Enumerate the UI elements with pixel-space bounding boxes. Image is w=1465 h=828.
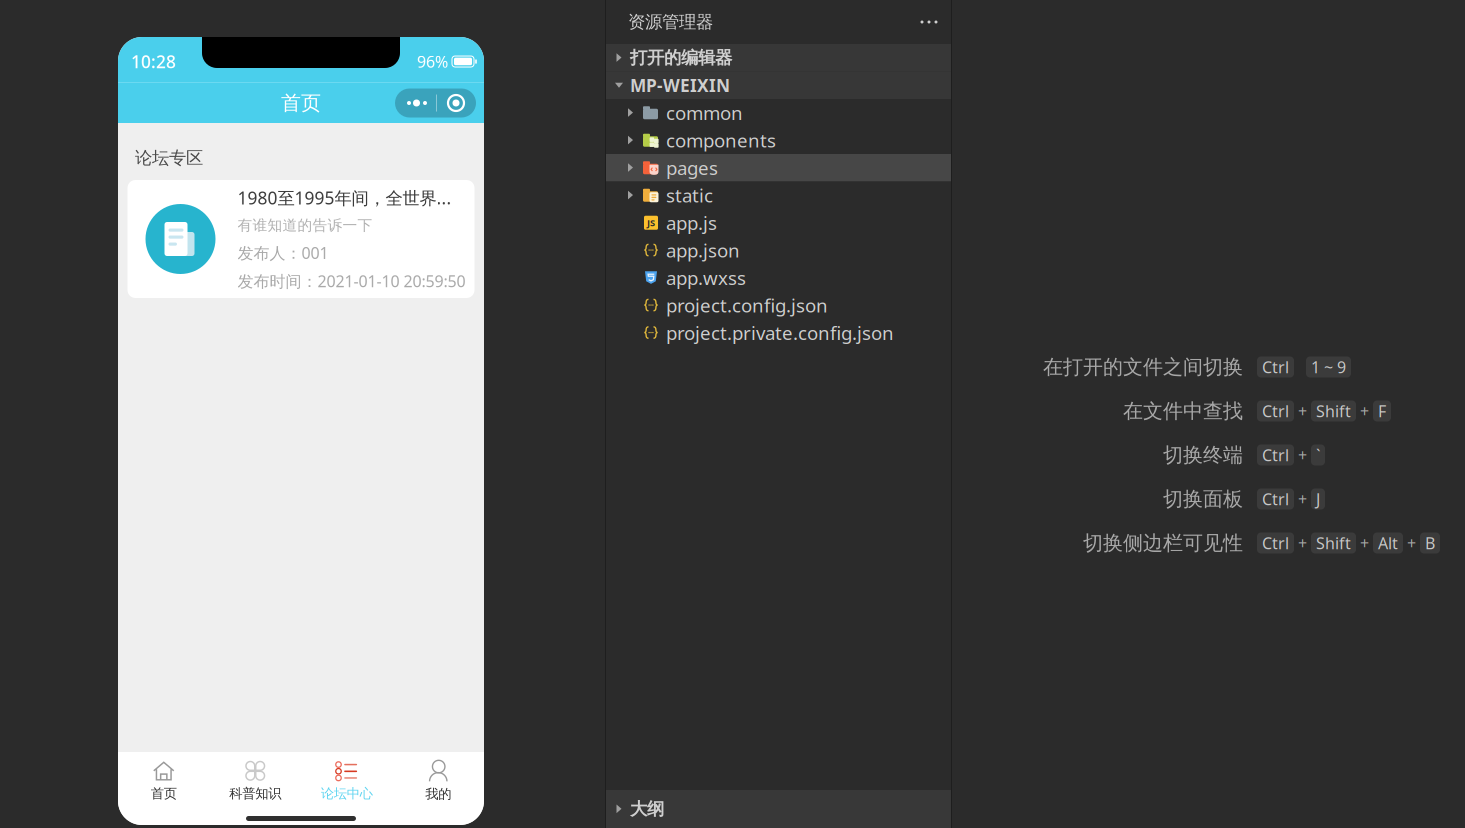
button[interactable]: static [606, 181, 951, 209]
staticText: 打开的编辑器 [630, 47, 732, 68]
staticText: 我的 [425, 786, 451, 802]
staticText: 大纲 [630, 798, 664, 820]
button[interactable]: pages [606, 154, 951, 181]
staticText: Ctrl [1262, 444, 1289, 466]
staticText: project.private.config.json [666, 320, 894, 345]
button[interactable]: 首页 [118, 757, 209, 805]
staticText: MP-WEIXIN [630, 74, 730, 97]
staticText: + [1360, 532, 1369, 554]
staticText: 1 ~ 9 [1311, 356, 1346, 378]
button[interactable]: Mini program menu [395, 88, 476, 117]
staticText: + [1360, 400, 1369, 422]
button[interactable]: app.json [606, 236, 951, 264]
staticText: 首页 [151, 785, 177, 802]
staticText: Ctrl [1262, 488, 1289, 510]
staticText: 发布人：001 [237, 242, 328, 263]
button[interactable]: MP-WEIXIN [606, 71, 951, 99]
staticText: Shift [1316, 532, 1351, 554]
staticText: J [1316, 488, 1320, 510]
staticText: 切换终端 [1163, 443, 1243, 467]
staticText: app.js [666, 210, 717, 235]
button[interactable]: 我的 [392, 757, 484, 805]
staticText: B [1425, 532, 1435, 554]
staticText: 发布时间：2021-01-10 20:59:50 [237, 270, 465, 292]
staticText: F [1378, 400, 1386, 422]
staticText: Ctrl [1262, 356, 1289, 378]
staticText: 在打开的文件之间切换 [1043, 355, 1243, 379]
staticText: + [1298, 444, 1307, 466]
staticText: 切换侧边栏可见性 [1083, 531, 1243, 555]
staticText: 首页 [281, 91, 321, 115]
staticText: + [1298, 488, 1307, 510]
staticText: components [666, 128, 776, 153]
staticText: 论坛专区 [135, 147, 203, 169]
staticText: 科普知识 [229, 785, 281, 802]
button[interactable]: components [606, 126, 951, 154]
staticText: 10:28 [131, 50, 176, 73]
staticText: 资源管理器 [628, 11, 713, 33]
staticText: 96% [417, 51, 448, 72]
staticText: 有谁知道的告诉一下 [237, 216, 372, 234]
staticText: Alt [1378, 532, 1398, 554]
button[interactable]: 打开的编辑器 [606, 44, 951, 71]
staticText: common [666, 100, 743, 125]
button[interactable]: More actions [911, 8, 947, 36]
staticText: JS [647, 217, 655, 229]
staticText: app.json [666, 238, 740, 263]
staticText: project.config.json [666, 293, 828, 318]
staticText: Ctrl [1262, 532, 1289, 554]
staticText: 论坛中心 [321, 785, 373, 802]
button[interactable]: JS [606, 209, 951, 236]
staticText: Ctrl [1262, 400, 1289, 422]
staticText: ` [1316, 444, 1320, 466]
staticText: static [666, 183, 713, 208]
staticText: + [1298, 532, 1307, 554]
button[interactable]: 科普知识 [209, 757, 301, 805]
staticText: Shift [1316, 400, 1351, 422]
staticText: pages [666, 155, 718, 180]
staticText: + [1407, 532, 1416, 554]
button[interactable]: project.private.config.json [606, 319, 951, 346]
button[interactable]: project.config.json [606, 291, 951, 319]
staticText: app.wxss [666, 265, 746, 290]
button[interactable]: 论坛中心 [301, 757, 392, 805]
button[interactable]: 1980至1995年间，全世界森林面... [127, 180, 474, 298]
staticText: 切换面板 [1163, 487, 1243, 511]
staticText: + [1298, 400, 1307, 422]
button[interactable]: common [606, 99, 951, 126]
button[interactable]: app.wxss [606, 264, 951, 291]
staticText: 1980至1995年间，全世界森林面... [237, 186, 456, 209]
button[interactable]: 大纲 [606, 790, 951, 828]
staticText: 在文件中查找 [1123, 399, 1243, 423]
